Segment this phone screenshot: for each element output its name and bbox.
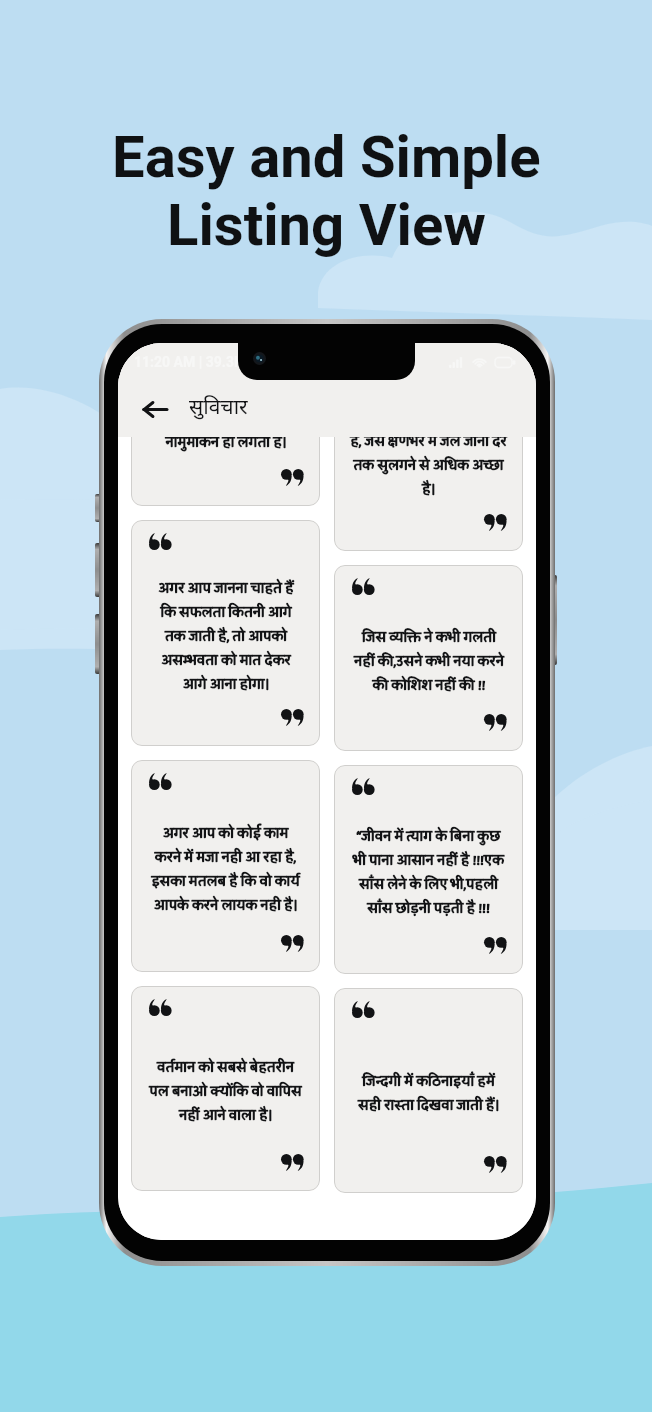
- staticText: वर्तमान को सबसे बेहतरीन पल बनाओ क्योंकि …: [149, 1055, 302, 1128]
- button[interactable]: किसी के प्रति मन में क्रोध लिये रहने की …: [334, 437, 523, 551]
- staticText: सुविचार: [189, 395, 248, 422]
- staticText: अगर आप को कोई काम करने में मजा नही आ रहा…: [151, 821, 300, 918]
- button[interactable]: जिस व्यक्ति ने कभी गलती नहीं की,उसने कभी…: [334, 565, 523, 751]
- button[interactable]: “जीवन में त्याग के बिना कुछ भी पाना आसान…: [334, 765, 523, 974]
- button[interactable]: जिन्दगी में कठिनाइयाँ हमें सही रास्ता दि…: [334, 988, 523, 1193]
- staticText: Listing View: [167, 191, 486, 259]
- button[interactable]: जब तक हम किसी भी काम को करने की कोशिश नह…: [131, 437, 320, 506]
- button[interactable]: अगर आप को कोई काम करने में मजा नही आ रहा…: [131, 760, 320, 972]
- staticText: जब तक हम किसी भी काम को करने की कोशिश नह…: [151, 437, 301, 455]
- staticText: जिस व्यक्ति ने कभी गलती नहीं की,उसने कभी…: [354, 625, 504, 698]
- button[interactable]: वर्तमान को सबसे बेहतरीन पल बनाओ क्योंकि …: [131, 986, 320, 1191]
- staticText: 11:20 AM | 39.3KB/s: [134, 354, 265, 370]
- staticText: किसी के प्रति मन में क्रोध लिये रहने की …: [350, 437, 507, 502]
- staticText: Easy and Simple: [112, 123, 541, 191]
- staticText: अगर आप जानना चाहते हैं कि सफलता कितनी आग…: [158, 576, 294, 697]
- button[interactable]: अगर आप जानना चाहते हैं कि सफलता कितनी आग…: [131, 520, 320, 746]
- staticText: “जीवन में त्याग के बिना कुछ भी पाना आसान…: [353, 824, 504, 921]
- staticText: जिन्दगी में कठिनाइयाँ हमें सही रास्ता दि…: [358, 1069, 499, 1118]
- button[interactable]: Back: [138, 392, 172, 426]
